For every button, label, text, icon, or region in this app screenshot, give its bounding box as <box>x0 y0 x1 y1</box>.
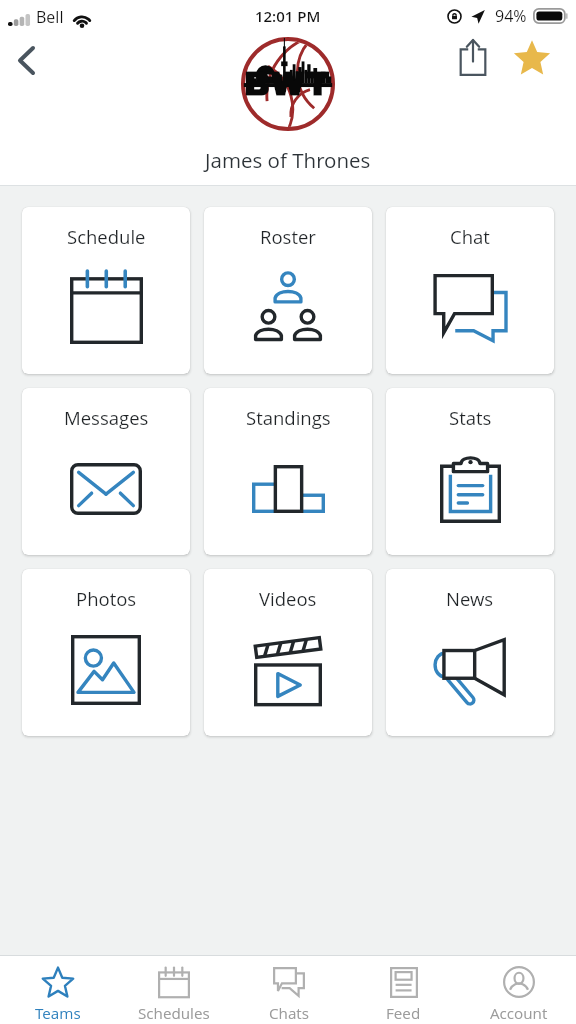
button[interactable]: Back <box>2 36 50 84</box>
button[interactable]: Videos <box>204 569 372 736</box>
staticText: Teams <box>35 1003 81 1024</box>
button[interactable]: Chat <box>386 207 554 374</box>
button[interactable]: Share <box>451 35 495 79</box>
button[interactable]: Roster <box>204 207 372 374</box>
button[interactable]: Account <box>461 956 576 1024</box>
staticText: Videos <box>259 586 317 611</box>
staticText: BWT <box>244 66 332 102</box>
staticText: Account <box>490 1003 548 1024</box>
button[interactable]: Stats <box>386 388 554 555</box>
button[interactable]: Messages <box>22 388 190 555</box>
staticText: Schedule <box>67 224 146 249</box>
staticText: James of Thrones <box>205 146 371 174</box>
staticText: Standings <box>246 405 331 430</box>
button[interactable]: Schedule <box>22 207 190 374</box>
staticText: Chats <box>269 1003 309 1024</box>
button[interactable]: News <box>386 569 554 736</box>
button[interactable]: Standings <box>204 388 372 555</box>
button[interactable]: Feed <box>346 956 461 1024</box>
staticText: 94% <box>495 5 527 27</box>
staticText: 12:01 PM <box>255 6 321 26</box>
staticText: Bell <box>36 6 64 28</box>
staticText: Stats <box>449 405 492 430</box>
staticText: Roster <box>260 224 316 249</box>
button[interactable]: Schedules <box>116 956 231 1024</box>
button[interactable]: Photos <box>22 569 190 736</box>
staticText: Messages <box>64 405 149 430</box>
staticText: Schedules <box>138 1003 210 1024</box>
button[interactable]: Chats <box>231 956 346 1024</box>
staticText: Photos <box>76 586 137 611</box>
staticText: Chat <box>450 224 490 249</box>
staticText: Feed <box>386 1003 421 1024</box>
button[interactable]: Teams <box>0 956 116 1024</box>
staticText: News <box>446 586 494 611</box>
button[interactable]: Favorite <box>510 36 554 80</box>
